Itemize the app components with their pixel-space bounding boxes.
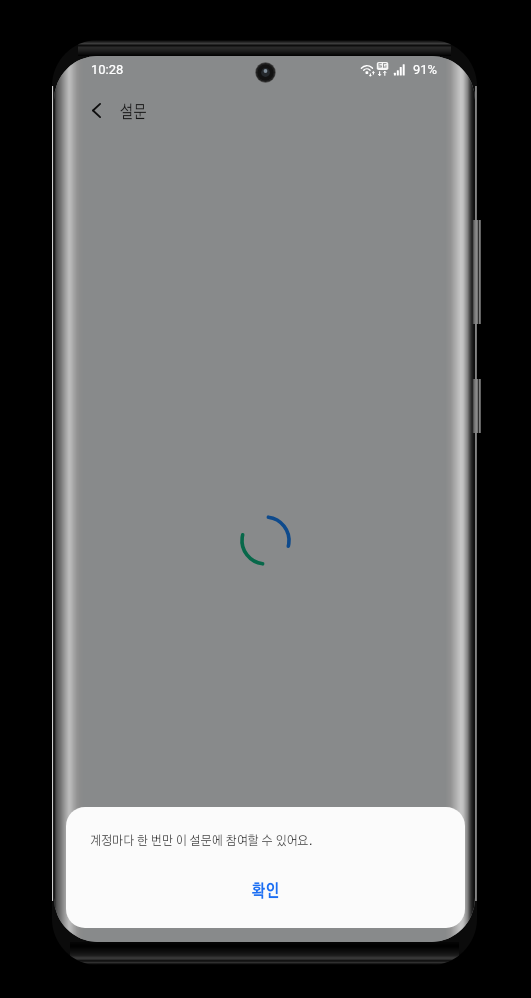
button[interactable]: Back <box>78 92 114 128</box>
staticText: 설문 <box>120 104 147 122</box>
staticText: 10:28 <box>91 62 124 77</box>
staticText: 91% <box>413 62 438 77</box>
staticText: 계정마다 한 번만 이 설문에 참여할 수 있어요. <box>90 835 313 848</box>
staticText: 확인 <box>251 883 279 901</box>
button[interactable]: 확인 <box>66 860 465 924</box>
